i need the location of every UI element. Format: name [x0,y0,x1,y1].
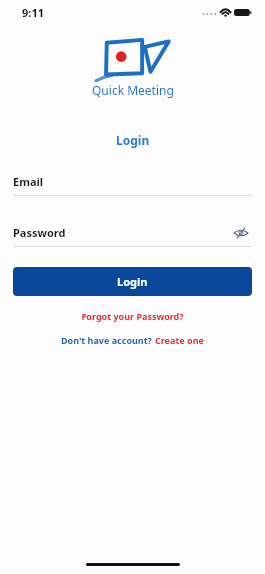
staticText: Password [13,225,66,240]
button[interactable]: Login [13,267,252,296]
staticText: Forgot your Password? [81,310,184,322]
staticText: Quick Meeting [92,82,174,98]
staticText: Create one [155,334,204,346]
button[interactable]: Email [13,168,252,195]
staticText: Email [13,174,44,189]
button[interactable]: Forgot your Password? [75,308,190,324]
staticText: Login [117,274,148,289]
button[interactable]: Show password [230,222,252,244]
staticText: Don't have account? [61,334,155,346]
button[interactable]: Password [13,219,252,246]
staticText: Login [116,132,150,148]
button[interactable]: Create one [155,332,204,348]
staticText: 9:11 [22,5,44,20]
